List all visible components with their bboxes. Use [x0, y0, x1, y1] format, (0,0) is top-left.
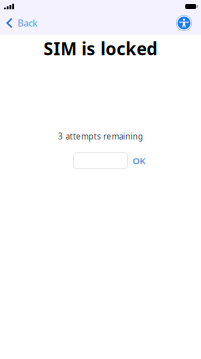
staticText: SIM is locked: [43, 37, 157, 60]
button[interactable]: Back: [0, 15, 46, 31]
staticText: OK: [132, 154, 145, 167]
button[interactable]: OK: [132, 154, 145, 167]
staticText: 3 attempts remaining: [58, 131, 143, 142]
button[interactable]: Accessibility: [174, 13, 194, 33]
staticText: Back: [17, 17, 37, 29]
